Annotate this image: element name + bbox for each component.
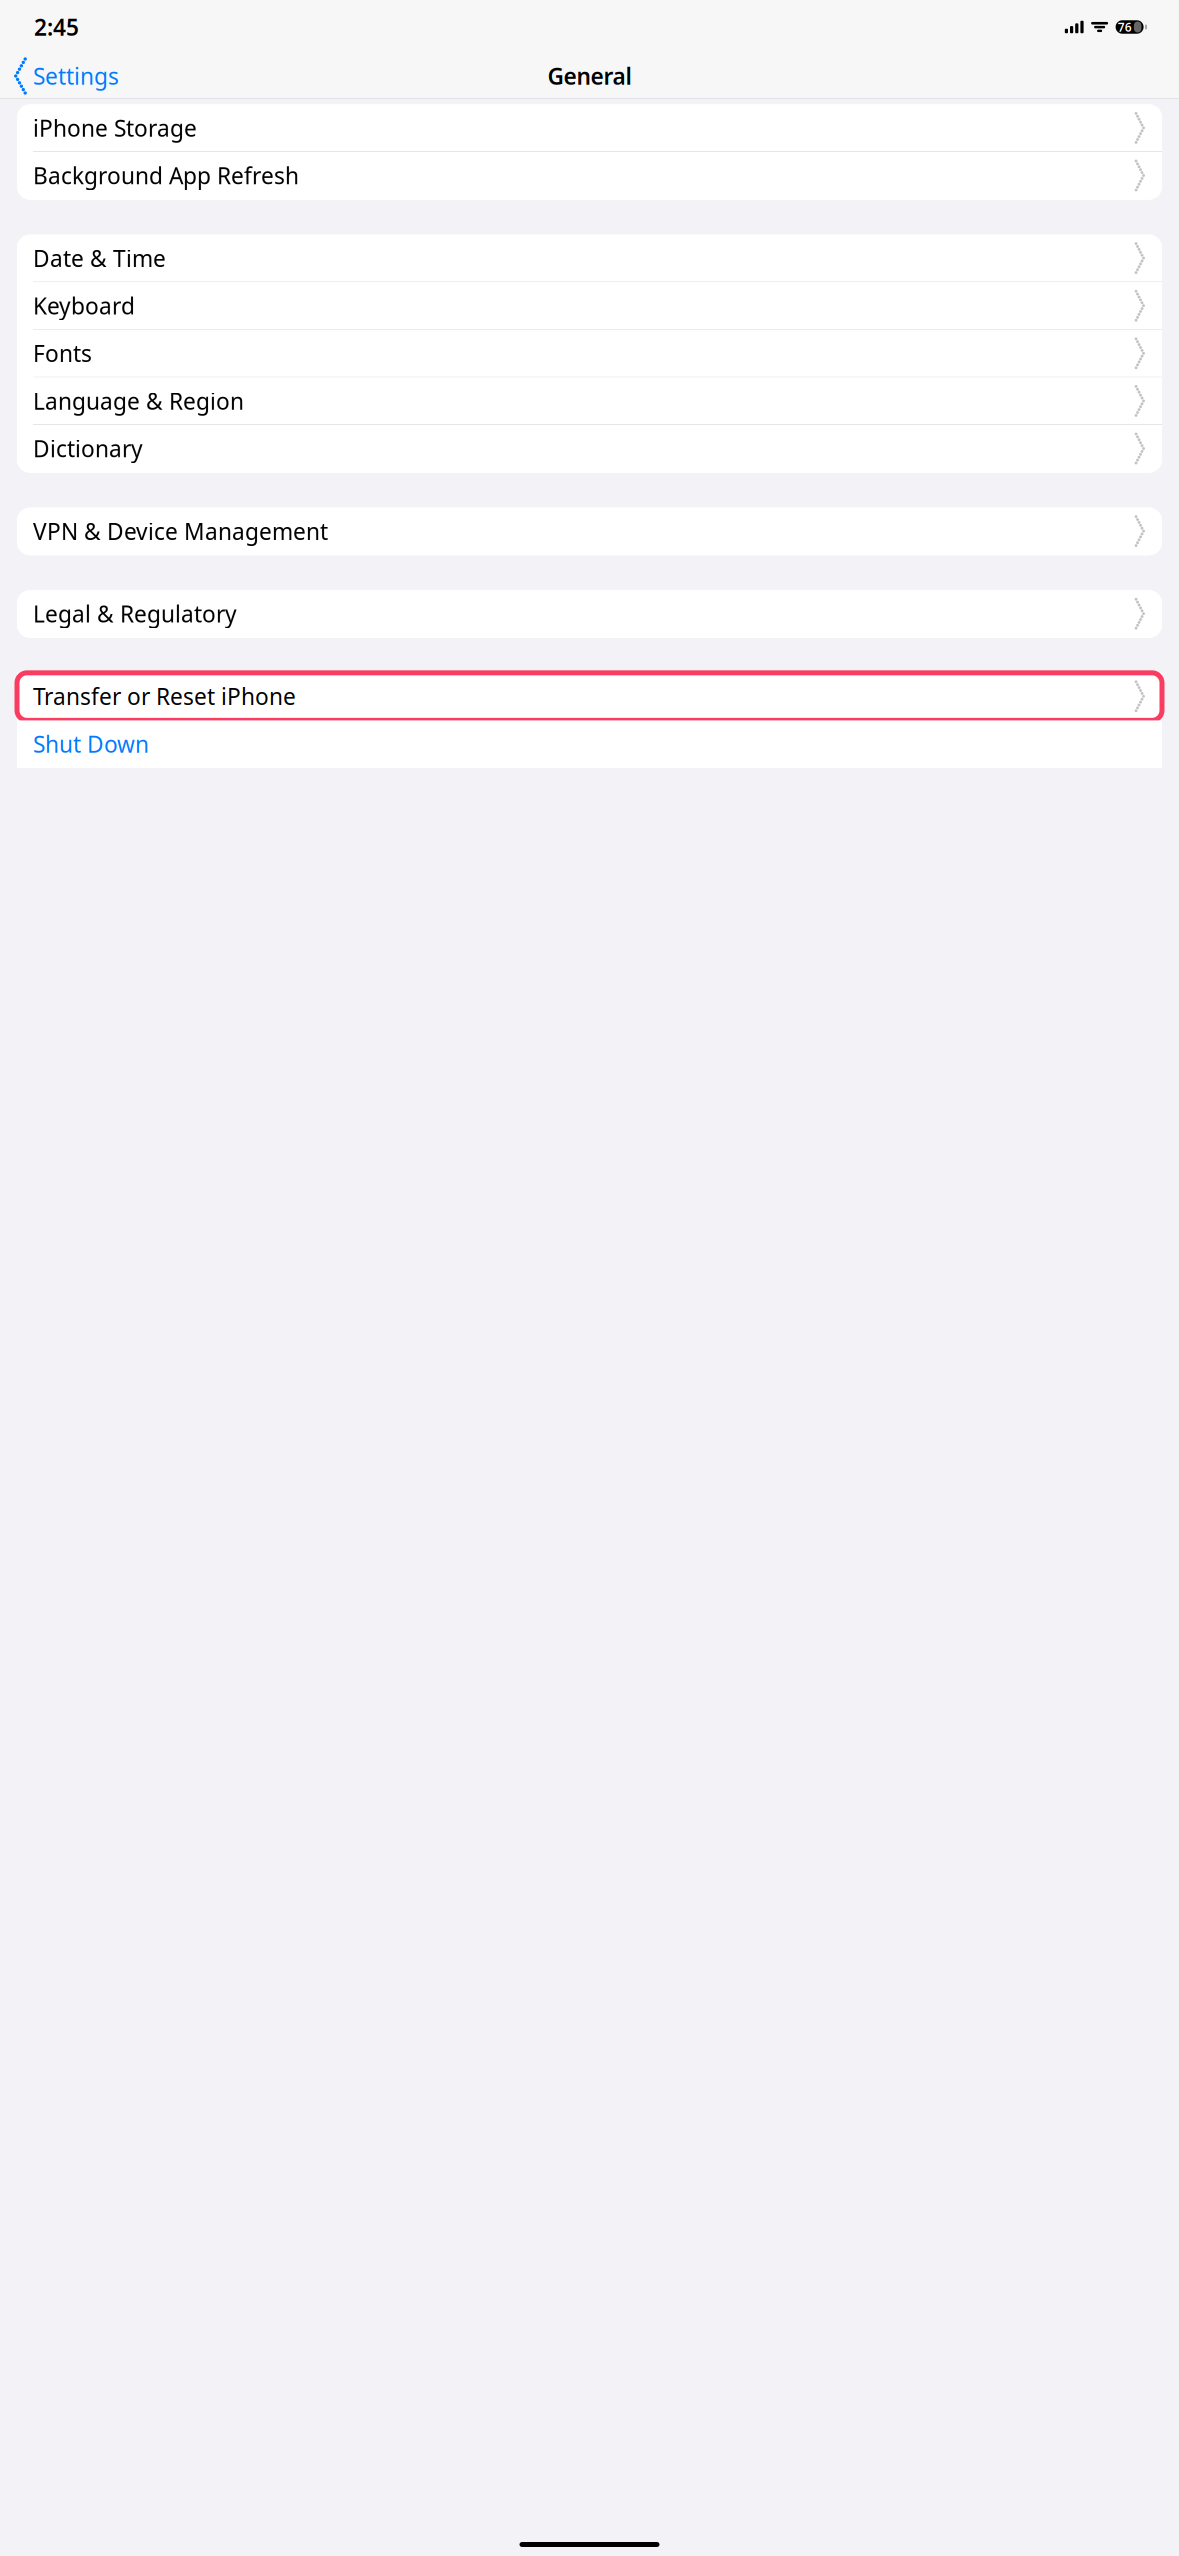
- staticText: Dictionary: [33, 433, 143, 463]
- button[interactable]: iPhone Storage: [17, 104, 1162, 152]
- button[interactable]: Transfer or Reset iPhone: [17, 673, 1162, 720]
- button[interactable]: Language & Region: [17, 377, 1162, 425]
- staticText: iPhone Storage: [33, 113, 197, 143]
- staticText: 2:45: [34, 12, 79, 42]
- staticText: Fonts: [33, 338, 92, 368]
- button[interactable]: Settings: [0, 54, 129, 98]
- button[interactable]: Keyboard: [17, 282, 1162, 330]
- staticText: Legal & Regulatory: [33, 599, 237, 629]
- staticText: Shut Down: [33, 729, 149, 759]
- button[interactable]: Background App Refresh: [17, 152, 1162, 200]
- button[interactable]: Fonts: [17, 330, 1162, 377]
- staticText: Background App Refresh: [33, 160, 299, 190]
- button[interactable]: Date & Time: [17, 235, 1162, 282]
- staticText: Date & Time: [33, 243, 166, 273]
- staticText: VPN & Device Management: [33, 516, 328, 546]
- button[interactable]: VPN & Device Management: [17, 508, 1162, 555]
- staticText: Transfer or Reset iPhone: [33, 681, 296, 711]
- staticText: 76: [1118, 19, 1132, 35]
- button[interactable]: Shut Down: [17, 720, 1162, 768]
- button[interactable]: Dictionary: [17, 425, 1162, 473]
- staticText: Keyboard: [33, 291, 135, 321]
- staticText: Language & Region: [33, 386, 244, 416]
- staticText: General: [547, 61, 631, 91]
- staticText: Settings: [33, 61, 119, 91]
- button[interactable]: Legal & Regulatory: [17, 590, 1162, 638]
